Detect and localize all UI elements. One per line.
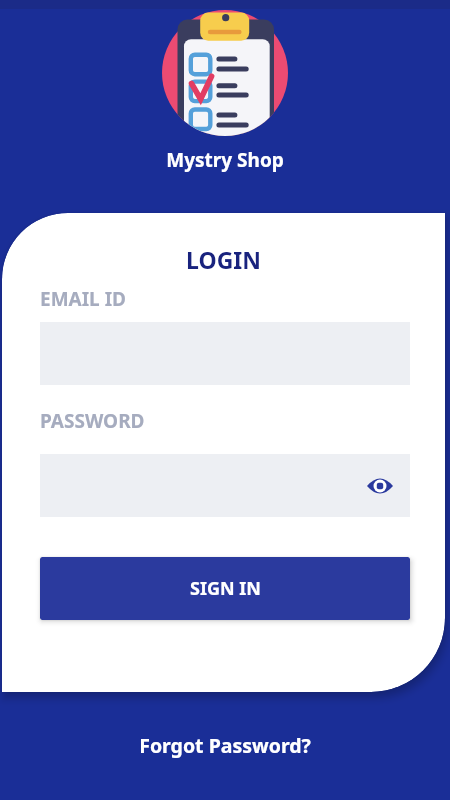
staticText: EMAIL ID: [40, 286, 126, 312]
button[interactable]: SIGN IN: [40, 557, 410, 620]
button[interactable]: [40, 454, 410, 517]
staticText: PASSWORD: [40, 408, 145, 434]
button[interactable]: Forgot Password?: [0, 732, 450, 759]
staticText: LOGIN: [2, 244, 445, 275]
staticText: Mystry Shop: [0, 147, 450, 173]
staticText: SIGN IN: [190, 576, 261, 601]
